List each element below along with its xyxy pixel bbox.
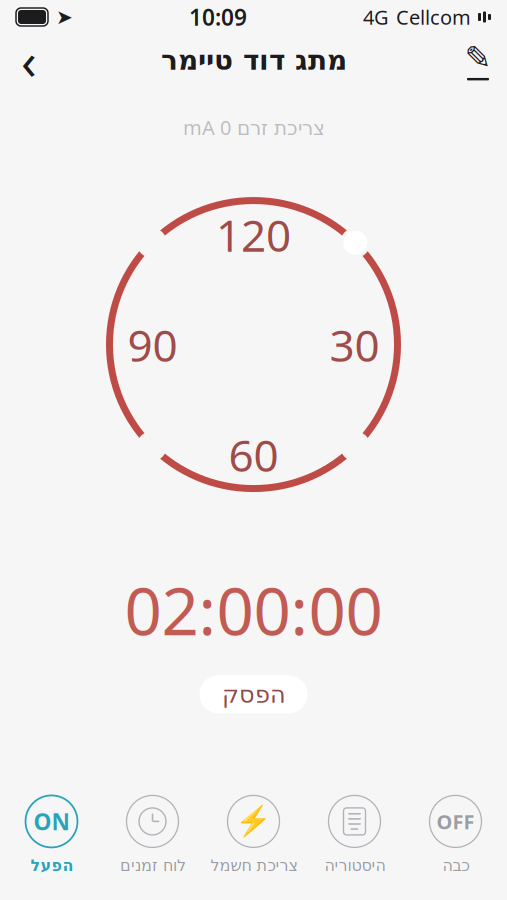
staticText: ON: [33, 806, 69, 836]
staticText: היסטוריה: [324, 856, 385, 875]
staticText: 4G: [363, 4, 389, 30]
staticText: 10:09: [189, 2, 247, 32]
staticText: ⚡: [235, 805, 272, 838]
button[interactable]: OFF: [405, 792, 506, 878]
button[interactable]: Edit: [449, 34, 507, 86]
staticText: ➤: [56, 6, 73, 28]
staticText: צריכת זרם 0 mA: [182, 114, 324, 141]
staticText: Cellcom: [396, 4, 471, 30]
staticText: הפעל: [30, 856, 73, 875]
staticText: 30: [329, 315, 379, 374]
button[interactable]: לוח זמנים: [102, 792, 203, 878]
staticText: לוח זמנים: [119, 856, 185, 875]
staticText: הפסק: [221, 681, 285, 708]
button[interactable]: ON: [1, 792, 102, 878]
staticText: 60: [228, 425, 278, 484]
staticText: צריכת חשמל: [210, 856, 297, 875]
staticText: מתג דוד טיימר: [160, 44, 346, 76]
staticText: 02:00:00: [124, 567, 382, 653]
staticText: OFF: [436, 808, 474, 835]
staticText: כבה: [442, 856, 469, 875]
button[interactable]: ⚡: [203, 792, 304, 878]
button[interactable]: Back: [0, 34, 58, 86]
button[interactable]: הפסק: [199, 675, 307, 713]
staticText: 120: [216, 205, 291, 264]
staticText: ✎: [464, 40, 491, 76]
staticText: ‹: [21, 26, 37, 94]
button[interactable]: היסטוריה: [304, 792, 405, 878]
staticText: 90: [127, 315, 177, 374]
